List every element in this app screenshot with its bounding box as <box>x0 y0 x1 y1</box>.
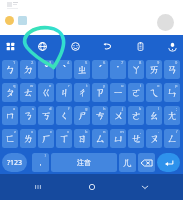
staticText: ㄩ <box>113 132 124 145</box>
staticText: ㄒ <box>59 132 70 145</box>
button[interactable]: ㄢ <box>164 60 180 79</box>
button[interactable]: ㄜ <box>128 106 144 125</box>
button[interactable]: ㄈ <box>2 129 18 148</box>
button[interactable]: ㄎ <box>38 106 54 125</box>
button[interactable]: ㄣ <box>164 83 180 102</box>
button[interactable]: ˙ <box>110 60 126 79</box>
staticText: 5 <box>85 60 88 65</box>
button[interactable]: Recent apps <box>31 180 45 194</box>
button[interactable]: Keyboard layouts <box>4 40 17 53</box>
staticText: ˇ <box>44 63 49 77</box>
staticText: 1 <box>13 60 16 65</box>
button[interactable]: ㄨ <box>110 106 126 125</box>
staticText: ㄆ <box>5 86 16 99</box>
staticText: ㄍ <box>41 86 52 99</box>
button[interactable]: ㄞ <box>146 60 162 79</box>
button[interactable]: ㄝ <box>128 129 144 148</box>
staticText: ㄘ <box>95 109 106 122</box>
button[interactable]: ㄦ <box>119 153 136 172</box>
button[interactable]: ㄤ <box>164 106 180 125</box>
button[interactable]: ㄏ <box>38 129 54 148</box>
button[interactable]: ㄋ <box>20 106 36 125</box>
staticText: t <box>86 83 88 88</box>
staticText: q <box>13 83 16 88</box>
button[interactable]: Hide keyboard <box>138 180 152 194</box>
staticText: 6 <box>103 60 106 65</box>
button[interactable]: Voice input <box>166 40 179 53</box>
staticText: ㄦ <box>122 156 133 169</box>
staticText: b <box>85 129 88 134</box>
button[interactable]: ㄑ <box>56 106 72 125</box>
button[interactable]: ㄗ <box>92 83 108 102</box>
button[interactable]: ㄙ <box>92 129 108 148</box>
button[interactable]: ㄟ <box>146 83 162 102</box>
staticText: ㄎ <box>41 109 52 122</box>
staticText: g <box>85 106 88 111</box>
button[interactable]: Home <box>85 180 99 194</box>
staticText: ㄓ <box>77 63 88 76</box>
button[interactable]: ㄆ <box>2 83 18 102</box>
staticText: ㄥ <box>167 132 178 145</box>
button[interactable]: ㄡ <box>146 129 162 148</box>
button[interactable]: ㄔ <box>74 83 90 102</box>
staticText: r <box>68 83 70 88</box>
staticText: 4 <box>67 60 70 65</box>
staticText: ˙ <box>117 63 119 77</box>
staticText: 0 <box>175 60 178 65</box>
staticText: 9 <box>157 60 160 65</box>
staticText: ㄨ <box>113 109 124 122</box>
staticText: ㄑ <box>59 109 70 122</box>
button[interactable]: ˊ <box>92 60 108 79</box>
button[interactable]: ㄒ <box>56 129 72 148</box>
button[interactable]: ˋ <box>56 60 72 79</box>
staticText: . <box>158 129 160 134</box>
staticText: ㄅ <box>5 63 16 76</box>
staticText: ㄧ <box>113 86 124 99</box>
button[interactable]: ㄘ <box>92 106 108 125</box>
staticText: s <box>32 106 34 111</box>
button[interactable]: ㄇ <box>2 106 18 125</box>
button[interactable]: 注音 <box>51 153 117 172</box>
button[interactable]: ㄌ <box>20 129 36 148</box>
button[interactable]: ?123 <box>2 153 27 172</box>
staticText: ㄜ <box>131 109 142 122</box>
staticText: ㄐ <box>59 86 70 99</box>
staticText: d <box>49 106 52 111</box>
button[interactable]: ㄕ <box>74 106 90 125</box>
staticText: / <box>176 129 178 134</box>
staticText: ㄢ <box>167 63 178 76</box>
staticText: 注音 <box>77 158 91 167</box>
staticText: ㄖ <box>77 132 88 145</box>
button[interactable]: Undo <box>101 40 114 53</box>
button[interactable]: ㄊ <box>20 83 36 102</box>
button[interactable]: Emoji <box>69 40 82 53</box>
staticText: , <box>140 129 142 134</box>
staticText: z <box>14 129 16 134</box>
button[interactable]: Backspace <box>138 153 155 172</box>
button[interactable]: ㄐ <box>56 83 72 102</box>
button[interactable]: ㄓ <box>74 60 90 79</box>
button[interactable]: Change language <box>36 40 49 53</box>
button[interactable]: ㄍ <box>38 83 54 102</box>
button[interactable]: ㄛ <box>128 83 144 102</box>
button[interactable]: ˇ <box>38 60 54 79</box>
button[interactable]: Clipboard <box>134 40 147 53</box>
button[interactable]: ㄉ <box>20 60 36 79</box>
button[interactable]: ㄖ <box>74 129 90 148</box>
button[interactable]: ㄚ <box>128 60 144 79</box>
button[interactable]: ㄩ <box>110 129 126 148</box>
staticText: ㄛ <box>131 86 142 99</box>
staticText: ㄋ <box>23 109 34 122</box>
staticText: ㄉ <box>23 63 34 76</box>
button[interactable]: ㄅ <box>2 60 18 79</box>
button[interactable]: Enter <box>157 153 180 172</box>
staticText: v <box>67 129 70 134</box>
button[interactable]: ㄠ <box>146 106 162 125</box>
button[interactable]: ㄧ <box>110 83 126 102</box>
button[interactable]: ， <box>32 153 49 172</box>
staticText: ㄏ <box>41 132 52 145</box>
staticText: k <box>139 106 142 111</box>
button[interactable]: ㄥ <box>164 129 180 148</box>
staticText: ㄣ <box>167 86 178 99</box>
staticText: n <box>103 129 106 134</box>
